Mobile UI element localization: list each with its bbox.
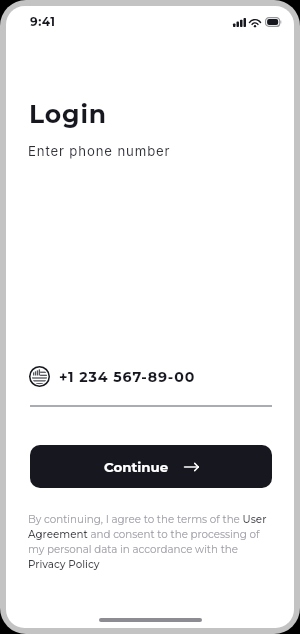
button[interactable]: Continue [30, 445, 272, 488]
other: Country code [29, 366, 50, 387]
staticText: Login [29, 99, 107, 129]
staticText: +1 234 567-89-00 [59, 368, 196, 385]
staticText: Continue [104, 459, 169, 475]
staticText: By continuing, I agree to the terms of t… [28, 513, 274, 571]
staticText: Enter phone number [28, 143, 171, 159]
staticText: 9:41 [30, 14, 56, 29]
button[interactable]: Country code [29, 360, 271, 392]
